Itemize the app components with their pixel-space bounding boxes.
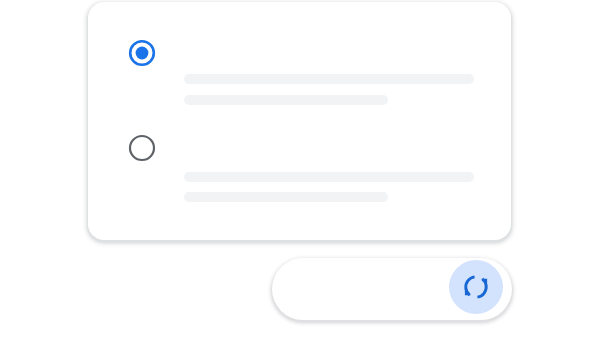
button[interactable]: Option two, not selected	[122, 128, 162, 168]
button[interactable]: Option one, selected	[122, 33, 162, 73]
button[interactable]: Sync	[449, 260, 503, 314]
button[interactable]	[88, 2, 511, 240]
